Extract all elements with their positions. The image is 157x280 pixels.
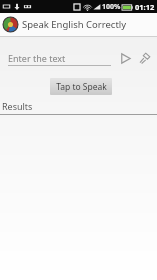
staticText: 100% [102, 2, 121, 12]
staticText: Tap to Speak [56, 81, 107, 93]
staticText: 01:12 [135, 2, 155, 12]
staticText: Speak English Correctly [22, 18, 127, 31]
staticText: Enter the text [8, 52, 66, 64]
button[interactable]: Play [117, 50, 133, 66]
button[interactable]: Tap to Speak [50, 78, 112, 95]
staticText: Results [2, 100, 33, 112]
button[interactable]: Speak [137, 50, 153, 66]
button[interactable]: Enter the text [8, 50, 111, 66]
